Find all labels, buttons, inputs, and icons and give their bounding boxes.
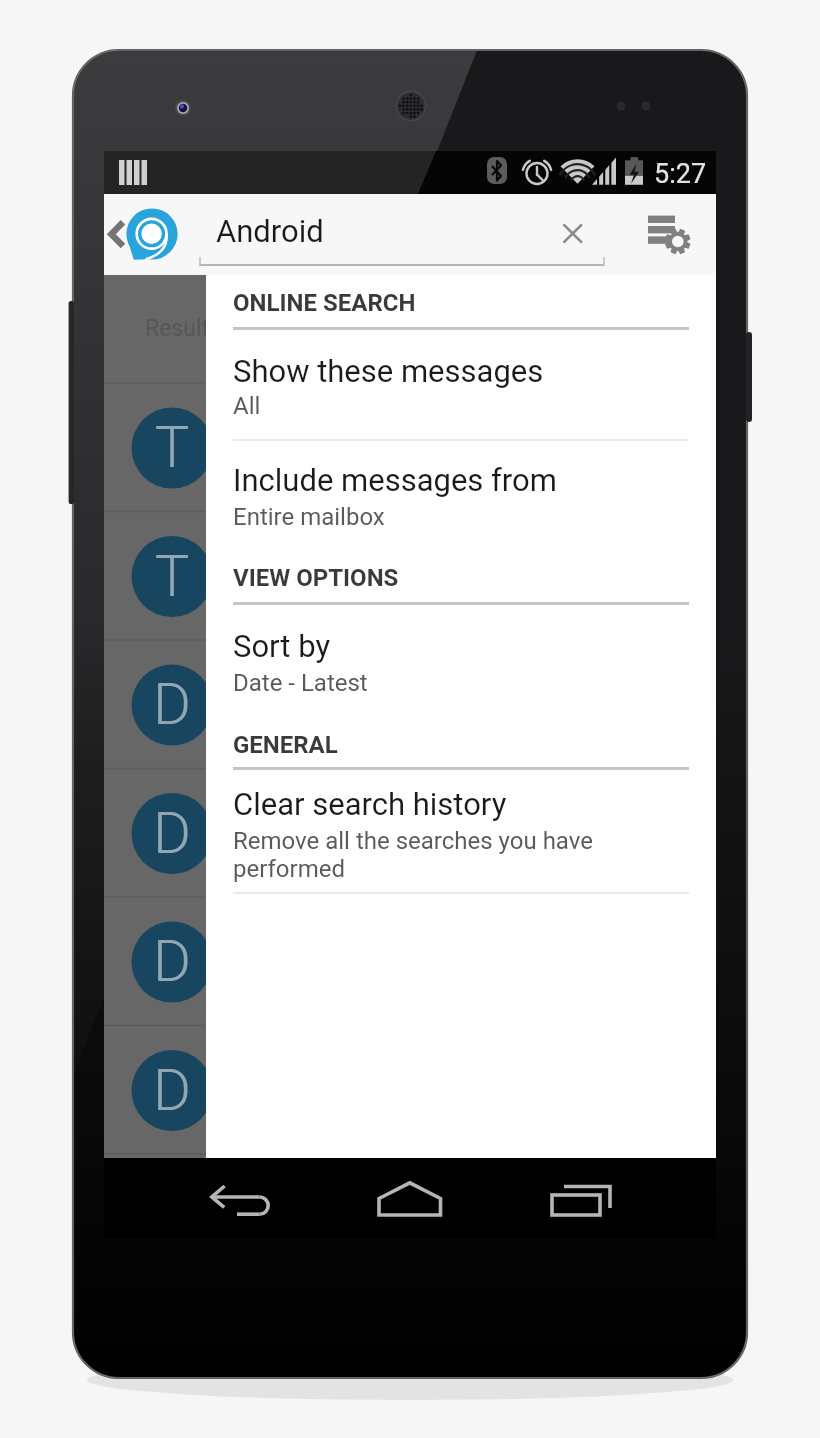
staticText: D <box>142 927 202 995</box>
staticText: GENERAL <box>233 731 338 759</box>
staticText: D <box>142 799 202 867</box>
staticText: D <box>142 1056 202 1124</box>
staticText: T <box>142 542 202 610</box>
staticText: 5:27 <box>654 158 707 190</box>
staticText: Sort by <box>233 628 693 664</box>
staticText: Include messages from <box>233 462 693 498</box>
button[interactable]: Recent apps <box>524 1158 644 1239</box>
staticText: Clear search history <box>233 786 693 822</box>
button[interactable] <box>206 339 716 434</box>
staticText: T <box>142 413 202 481</box>
button[interactable]: Back <box>186 1158 306 1239</box>
button[interactable] <box>206 614 716 711</box>
button[interactable]: Home <box>354 1158 474 1239</box>
staticText: D <box>142 670 202 738</box>
staticText: ONLINE SEARCH <box>233 289 416 317</box>
staticText: Date - Latest <box>233 669 683 697</box>
staticText: Entire mailbox <box>233 503 683 531</box>
button[interactable]: Clear search <box>541 203 605 267</box>
button[interactable] <box>206 448 716 545</box>
staticText: Results <box>145 315 221 342</box>
staticText: Remove all the searches you have perform… <box>233 827 683 883</box>
button[interactable]: Back <box>104 194 196 275</box>
button[interactable]: Search settings <box>640 202 704 266</box>
button[interactable] <box>206 772 716 869</box>
staticText: All <box>233 392 683 420</box>
staticText: VIEW OPTIONS <box>233 564 399 592</box>
staticText: Android <box>216 213 324 249</box>
staticText: Show these messages <box>233 353 693 389</box>
